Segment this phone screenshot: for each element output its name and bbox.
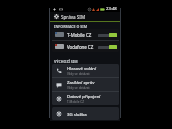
staticText: T-Mobile CZ — [67, 100, 85, 104]
button[interactable]: Vodafone CZ — [52, 41, 119, 52]
staticText: Vždy se dotázat — [67, 86, 90, 90]
button[interactable]: T-Mobile CZ — [52, 29, 119, 40]
button[interactable]: Datové připojení — [52, 92, 119, 105]
staticText: T-Mobile CZ — [67, 32, 92, 38]
staticText: 23:48 — [106, 6, 117, 12]
staticText: VÝCHOZÍ SIM — [54, 59, 78, 64]
staticText: Vždy se dotázat — [67, 72, 90, 76]
button[interactable]: 3G služba — [52, 107, 119, 120]
button[interactable]: Toggle T-Mobile CZ — [98, 33, 117, 37]
staticText: 3G služba — [67, 111, 87, 117]
button[interactable]: Hlasové volání — [52, 64, 119, 77]
staticText: Správa SIM — [61, 14, 86, 20]
button[interactable]: Zasílání zpráv — [52, 78, 119, 91]
staticText: Hlasové volání — [67, 65, 97, 71]
staticText: Vodafone CZ — [67, 44, 94, 50]
button[interactable]: Toggle Vodafone CZ — [98, 45, 117, 49]
button[interactable]: Správa SIM — [50, 12, 120, 21]
staticText: Datové připojení — [67, 93, 101, 99]
staticText: Zasílání zpráv — [67, 79, 95, 85]
staticText: INFORMACE O SIM — [54, 24, 88, 29]
